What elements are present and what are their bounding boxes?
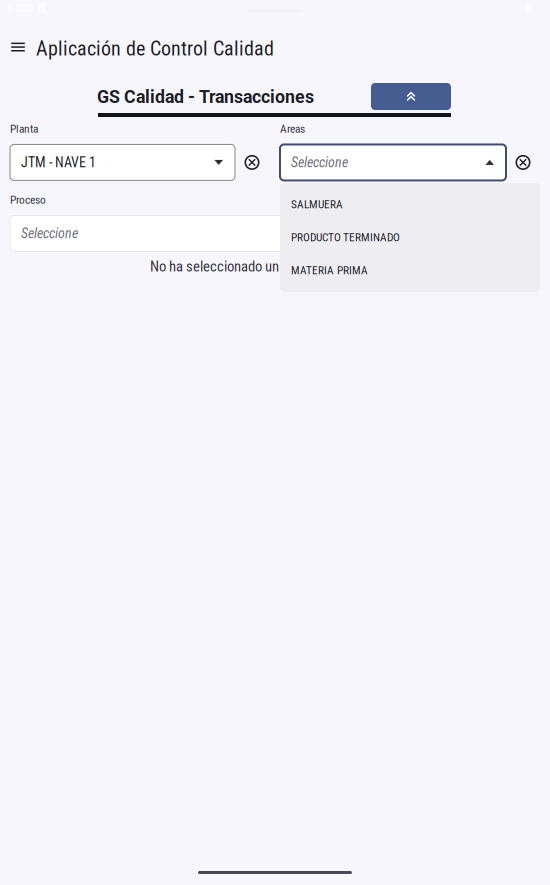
staticText: Aplicación de Control Calidad — [36, 37, 274, 60]
staticText: SALMUERA — [291, 198, 343, 211]
button[interactable]: Limpiar Planta — [235, 153, 261, 171]
staticText: PRODUCTO TERMINADO — [291, 231, 400, 244]
staticText: Seleccione — [21, 225, 78, 242]
staticText: MATERIA PRIMA — [291, 264, 368, 277]
staticText: Seleccione — [291, 154, 348, 171]
button[interactable]: JTM - NAVE 1 — [10, 144, 235, 180]
staticText: Planta — [10, 122, 38, 135]
staticText: No ha seleccionado un proceso — [150, 258, 328, 275]
staticText: JTM - NAVE 1 — [21, 154, 96, 171]
button[interactable]: PRODUCTO TERMINADO — [280, 221, 540, 254]
button[interactable]: GS Calidad - Transacciones — [97, 82, 315, 112]
staticText: Proceso — [10, 193, 46, 206]
staticText: GS Calidad - Transacciones — [97, 87, 314, 107]
button[interactable]: SALMUERA — [280, 188, 540, 221]
button[interactable]: Limpiar Areas — [506, 153, 532, 171]
button[interactable]: Seleccione — [280, 144, 506, 180]
button[interactable]: Contraer — [371, 83, 451, 110]
staticText: Areas — [280, 122, 305, 135]
button[interactable]: MATERIA PRIMA — [280, 254, 540, 287]
button[interactable]: Menú — [3, 32, 33, 62]
button[interactable]: Seleccione — [10, 215, 506, 251]
